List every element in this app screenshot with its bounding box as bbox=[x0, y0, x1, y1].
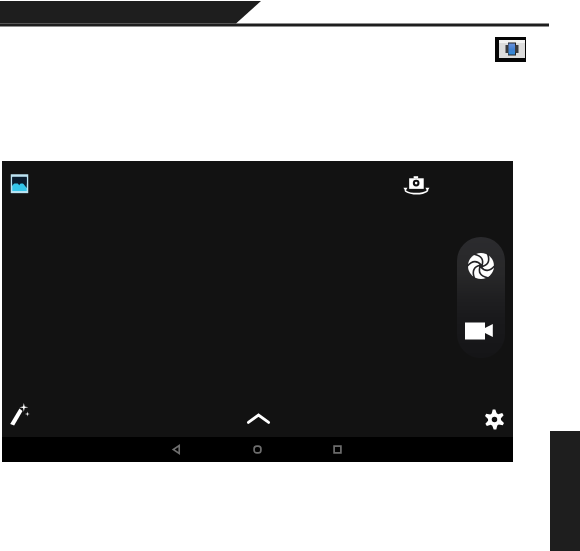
button[interactable]: Back bbox=[168, 441, 185, 458]
button[interactable]: Camera app icon bbox=[495, 37, 526, 62]
button[interactable]: Gallery bbox=[10, 173, 29, 194]
button[interactable]: Record video bbox=[457, 297, 505, 358]
button[interactable]: Expand options bbox=[247, 412, 270, 425]
button[interactable]: Settings bbox=[484, 409, 505, 430]
button[interactable]: Home bbox=[249, 441, 266, 458]
button[interactable]: Recents bbox=[329, 441, 346, 458]
button[interactable]: Shutter bbox=[457, 237, 505, 297]
button[interactable]: Switch camera bbox=[403, 173, 431, 196]
button[interactable]: Effects bbox=[8, 402, 30, 426]
